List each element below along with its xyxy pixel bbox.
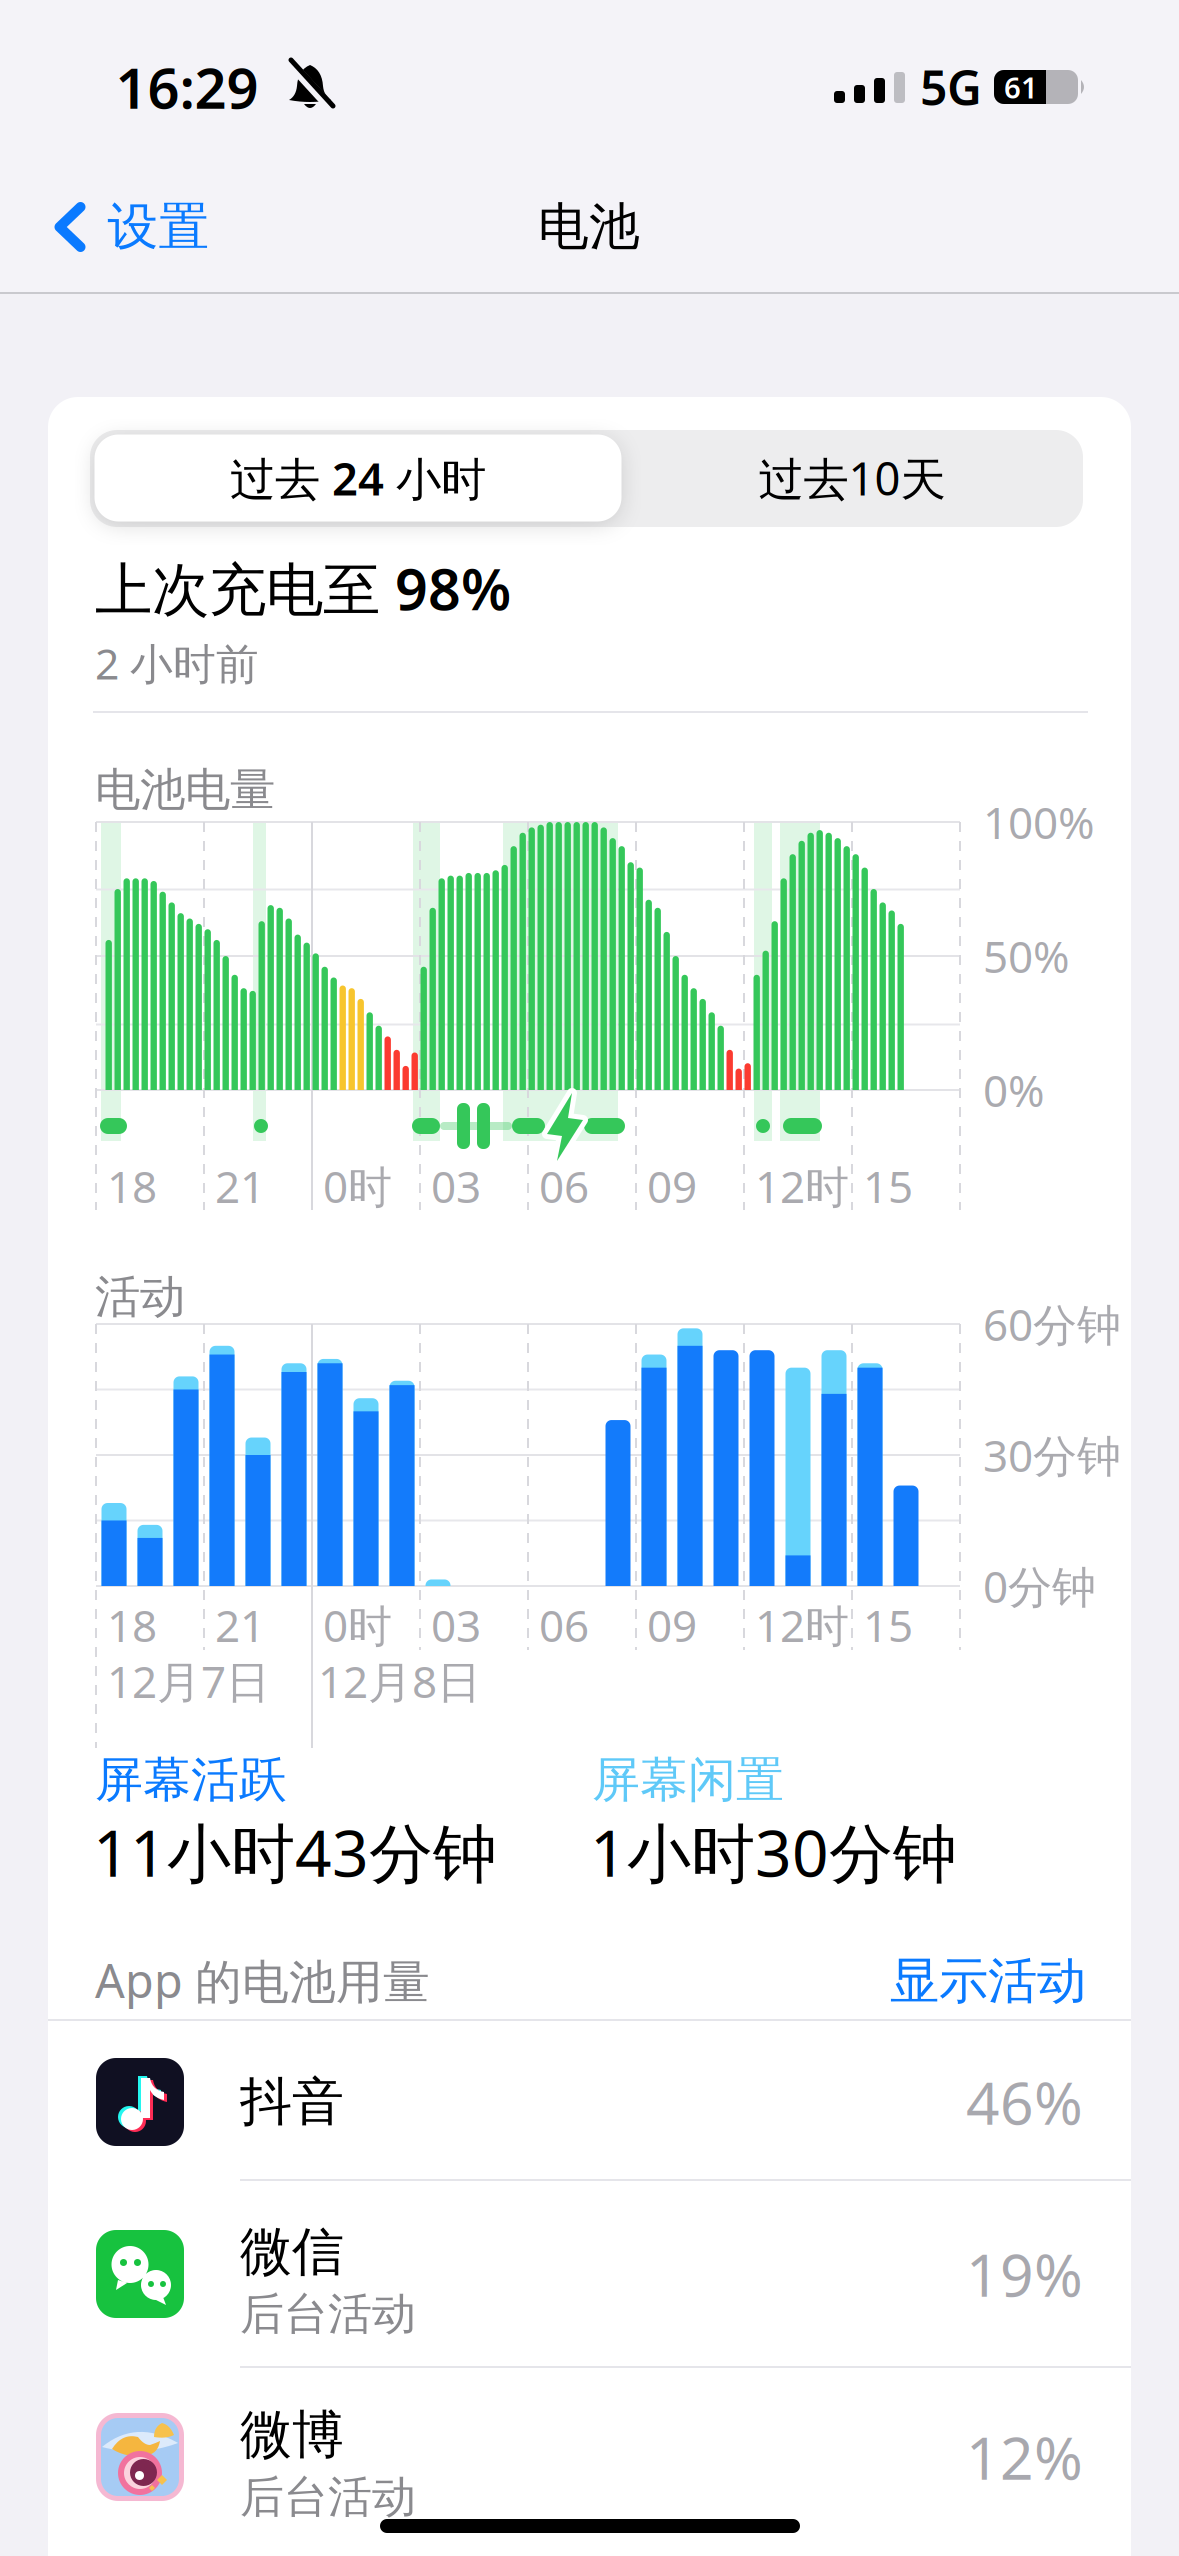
staticText: 显示活动 (890, 1951, 1086, 2011)
staticText: 活动 (95, 1269, 185, 1325)
staticText: 2 小时前 (95, 635, 259, 691)
staticText: 30分钟 (983, 1426, 1121, 1484)
staticText: 5G (920, 55, 982, 119)
staticText: 18 (107, 1157, 157, 1215)
button[interactable] (48, 2023, 1131, 2181)
staticText: 电池 (538, 196, 640, 258)
staticText: 03 (431, 1157, 481, 1215)
staticText: 0时 (323, 1157, 392, 1215)
staticText: 过去10天 (758, 448, 945, 508)
staticText: 屏幕活跃 (95, 1750, 287, 1809)
button[interactable]: 过去 24 小时 (94, 434, 621, 521)
staticText: 15 (863, 1157, 913, 1215)
staticText: 12时 (755, 1157, 849, 1215)
staticText: 过去 24 小时 (230, 448, 486, 508)
staticText: 21 (215, 1157, 265, 1215)
staticText: 12月7日 (107, 1652, 270, 1710)
staticText: 抖音 (240, 2070, 344, 2134)
staticText: 46% (966, 2063, 1083, 2141)
staticText: 0% (983, 1061, 1045, 1119)
staticText: 100% (983, 793, 1095, 851)
staticText: 上次充电至 98% (95, 550, 511, 626)
staticText: 06 (539, 1596, 589, 1654)
button[interactable]: 设置 (22, 182, 242, 272)
button[interactable] (48, 2179, 1131, 2369)
button[interactable]: 过去10天 (622, 434, 1082, 521)
staticText: 1小时30分钟 (590, 1809, 957, 1894)
staticText: 电池电量 (95, 762, 275, 818)
staticText: 60分钟 (983, 1295, 1121, 1353)
staticText: 11小时43分钟 (93, 1809, 497, 1894)
staticText: 21 (215, 1596, 265, 1654)
staticText: App 的电池用量 (95, 1949, 430, 2011)
staticText: 微信 (240, 2220, 344, 2284)
staticText: 屏幕闲置 (592, 1750, 784, 1809)
staticText: 03 (431, 1596, 481, 1654)
staticText: 微博 (240, 2403, 344, 2467)
staticText: 16:29 (115, 50, 258, 124)
staticText: 0分钟 (983, 1557, 1096, 1615)
staticText: 12时 (755, 1596, 849, 1654)
staticText: 12% (966, 2418, 1083, 2496)
staticText: 设置 (107, 196, 209, 258)
staticText: 06 (539, 1157, 589, 1215)
staticText: 0时 (323, 1596, 392, 1654)
staticText: 12月8日 (318, 1652, 481, 1710)
staticText: 18 (107, 1596, 157, 1654)
staticText: 15 (863, 1596, 913, 1654)
staticText: 19% (966, 2235, 1083, 2313)
button[interactable] (48, 2362, 1131, 2552)
staticText: 61 (1004, 67, 1038, 106)
staticText: 50% (983, 927, 1070, 985)
staticText: 09 (647, 1157, 697, 1215)
staticText: 09 (647, 1596, 697, 1654)
staticText: 后台活动 (240, 2287, 416, 2341)
button[interactable]: 显示活动 (786, 1941, 1086, 2021)
staticText: 后台活动 (240, 2470, 416, 2524)
